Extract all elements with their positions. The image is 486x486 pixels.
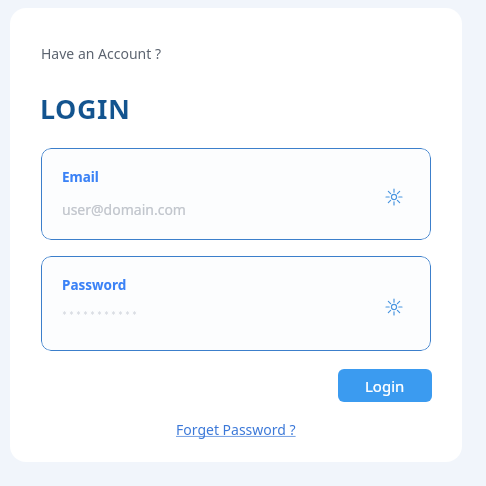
- button[interactable]: Forget Password ?: [172, 418, 300, 441]
- button[interactable]: Login: [338, 369, 432, 402]
- staticText: Email: [62, 168, 99, 186]
- staticText: Forget Password ?: [176, 420, 296, 439]
- button[interactable]: Email: [41, 148, 431, 240]
- button[interactable]: Show password: [383, 296, 405, 318]
- staticText: Password: [62, 276, 127, 294]
- staticText: Have an Account ?: [41, 44, 161, 63]
- staticText: user@domain.com: [62, 200, 186, 219]
- staticText: LOGIN: [40, 90, 131, 127]
- staticText: Login: [365, 376, 405, 396]
- button[interactable]: Password: [41, 256, 431, 351]
- button[interactable]: Toggle email suggestions: [383, 186, 405, 208]
